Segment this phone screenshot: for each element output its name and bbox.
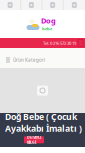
button[interactable]: Menu [78,39,85,46]
button[interactable]: Ürün Kategori [0,48,85,68]
button[interactable]: Bookmarks [21,0,42,10]
staticText: Ayakkabı İmalatı ) [5,122,82,134]
button[interactable]: Tabs [42,0,64,10]
staticText: Doğ Bebe ( Çocuk [5,111,77,122]
staticText: DETAYLI BİLGİ [27,135,41,145]
staticText: bebe [42,26,52,31]
button[interactable]: More [64,0,85,10]
staticText: Dog [41,16,56,26]
staticText: Ürün Kategori [13,57,45,63]
button[interactable]: Share [0,0,21,10]
staticText: Tel: 0 216 572 30 19 [43,40,76,46]
button[interactable]: Dog [0,10,85,38]
button[interactable]: DETAYLI BİLGİ [24,136,44,143]
